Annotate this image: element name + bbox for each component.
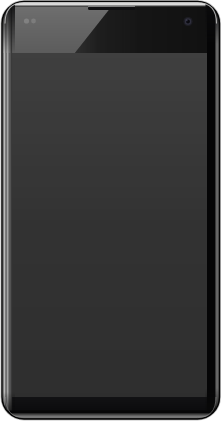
other: Phone device preview, screen off	[0, 0, 222, 430]
